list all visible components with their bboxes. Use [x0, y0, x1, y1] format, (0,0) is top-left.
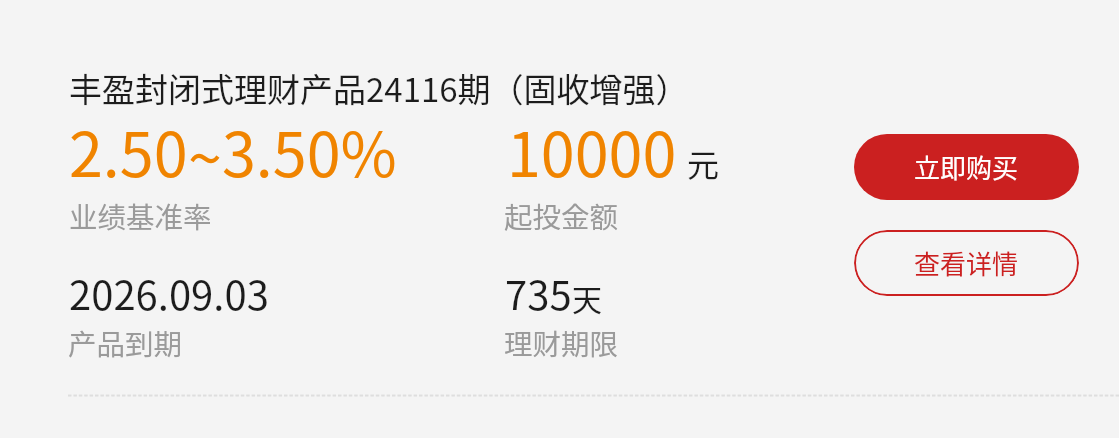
staticText: 天: [572, 276, 602, 319]
staticText: 元: [687, 140, 720, 186]
staticText: 3.50%: [222, 106, 397, 194]
button[interactable]: [40, 46, 800, 376]
button[interactable]: 查看详情: [854, 230, 1079, 296]
staticText: 10000: [507, 106, 677, 194]
staticText: 2026.09.03: [69, 264, 269, 322]
staticText: 业绩基准率: [69, 195, 212, 236]
staticText: 产品到期: [68, 322, 183, 363]
staticText: 立即购买: [914, 148, 1019, 186]
staticText: 735: [505, 264, 572, 322]
staticText: 2.50: [69, 106, 188, 194]
staticText: 查看详情: [914, 244, 1019, 282]
staticText: 丰盈封闭式理财产品24116期（固收增强）: [69, 64, 689, 112]
button[interactable]: 立即购买: [854, 134, 1079, 200]
staticText: 理财期限: [504, 322, 619, 363]
staticText: ~: [188, 110, 222, 198]
staticText: 起投金额: [504, 195, 619, 236]
